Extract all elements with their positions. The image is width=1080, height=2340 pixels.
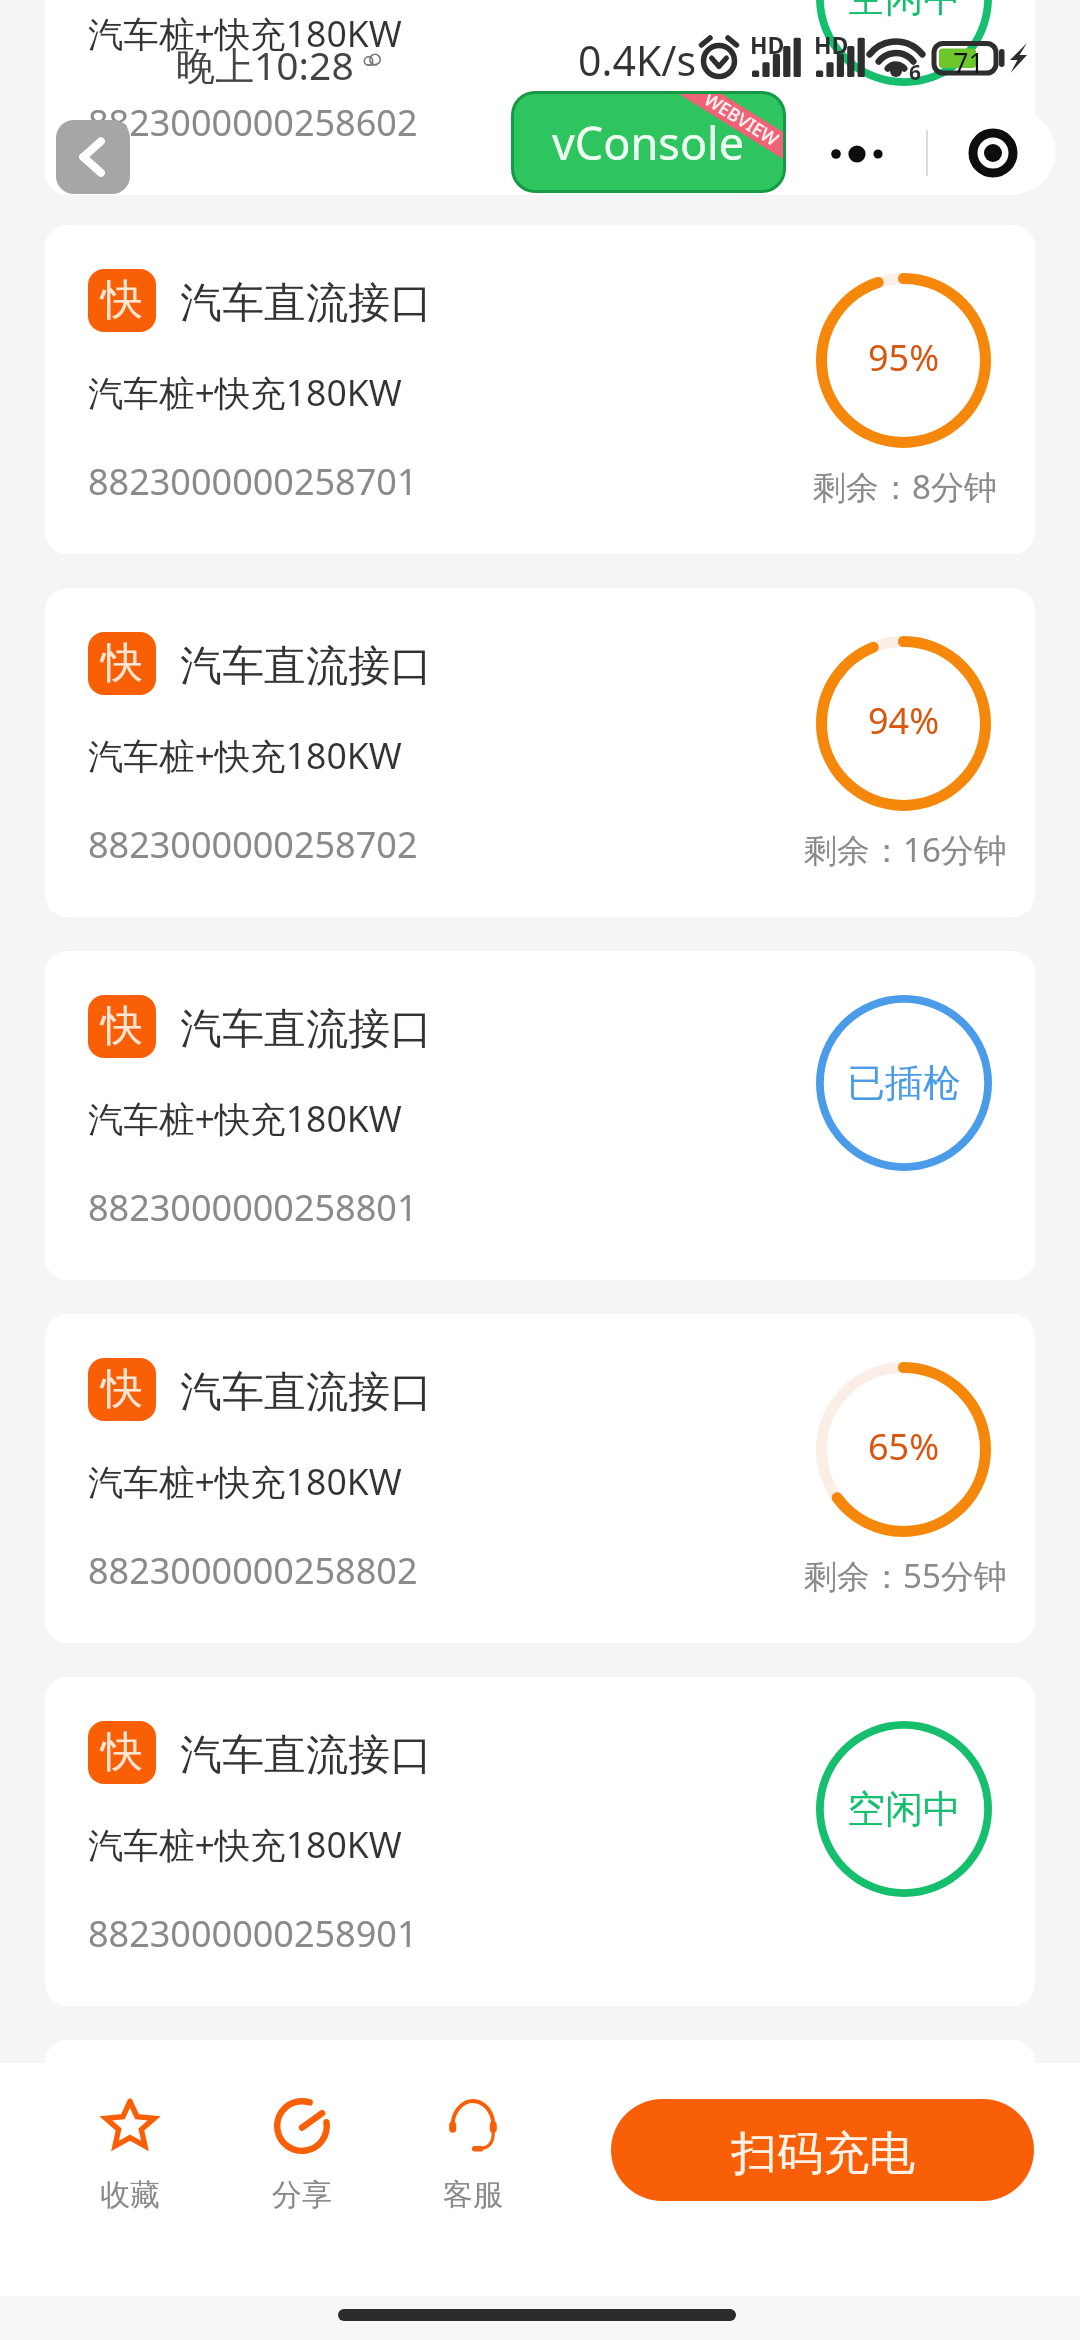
staticText: 94% (868, 696, 940, 745)
staticText: 分享 (272, 2176, 332, 2214)
button[interactable]: 快 (45, 0, 1035, 195)
staticText: HD (814, 29, 849, 60)
staticText: 汽车桩+快充180KW (88, 1094, 402, 1140)
staticText: 扫码充电 (731, 2125, 915, 2183)
staticText: 剩余：16分钟 (804, 827, 1007, 872)
button[interactable]: 快 (45, 1677, 1035, 2006)
staticText: 8823000000258901 (88, 1909, 418, 1955)
staticText: 65% (868, 1422, 940, 1471)
staticText: 汽车桩+快充180KW (88, 1820, 402, 1866)
staticText: 汽车直流接口 (180, 277, 432, 323)
button[interactable]: 客服 (388, 2090, 558, 2214)
staticText: 汽车直流接口 (180, 1366, 432, 1412)
button[interactable]: 分享 (217, 2090, 387, 2214)
button[interactable]: Back (56, 120, 130, 194)
staticText: 快 (101, 1726, 143, 1779)
staticText: 剩余：8分钟 (813, 464, 997, 509)
staticText: 汽车直流接口 (180, 1729, 432, 1775)
staticText: 空闲中 (847, 1785, 961, 1833)
staticText: HD (750, 29, 785, 60)
button[interactable]: 快 (45, 1314, 1035, 1643)
staticText: 汽车直流接口 (180, 640, 432, 686)
staticText: 汽车桩+快充180KW (88, 368, 402, 414)
button[interactable]: More options (795, 110, 926, 194)
staticText: 汽车桩+快充180KW (88, 1457, 402, 1503)
staticText: 汽车桩+快充180KW (88, 9, 402, 55)
staticText: 快 (101, 274, 143, 327)
staticText: 快 (101, 637, 143, 690)
staticText: 汽车直流接口 (180, 2092, 432, 2138)
staticText: 空闲中 (847, 0, 961, 22)
staticText: 收藏 (100, 2176, 160, 2214)
button[interactable]: 快 (45, 225, 1035, 554)
staticText: 8823000000258701 (88, 457, 418, 503)
staticText: 8823000000258702 (88, 820, 418, 866)
staticText: 客服 (443, 2176, 503, 2214)
staticText: 95% (868, 333, 940, 382)
button[interactable]: 快 (45, 951, 1035, 1280)
staticText: 晚上10:28 (176, 38, 354, 91)
staticText: 汽车桩+快充180KW (88, 2183, 402, 2229)
staticText: 汽车直流接口 (180, 1003, 432, 1049)
staticText: 71 (953, 44, 984, 81)
button[interactable]: 扫码充电 (611, 2099, 1034, 2201)
staticText: 剩余：55分钟 (804, 1553, 1007, 1598)
staticText: 8823000000258801 (88, 1183, 418, 1229)
staticText: vConsole (552, 112, 745, 173)
button[interactable]: Close (927, 110, 1056, 194)
button[interactable]: WEBVIEW (511, 91, 786, 193)
button[interactable]: 快 (45, 2040, 1035, 2340)
staticText: WEBVIEW (700, 94, 783, 151)
staticText: 快 (101, 1363, 143, 1416)
staticText: 8823000000258602 (88, 98, 418, 144)
button[interactable]: 收藏 (45, 2090, 215, 2214)
staticText: 快 (101, 2089, 143, 2142)
staticText: 0.4K/s (578, 32, 697, 88)
staticText: 已插枪 (847, 1059, 961, 1107)
staticText: 汽车桩+快充180KW (88, 731, 402, 777)
staticText: 快 (101, 1000, 143, 1053)
staticText: 6 (909, 58, 922, 87)
button[interactable]: 快 (45, 588, 1035, 917)
staticText: 8823000000258802 (88, 1546, 418, 1592)
